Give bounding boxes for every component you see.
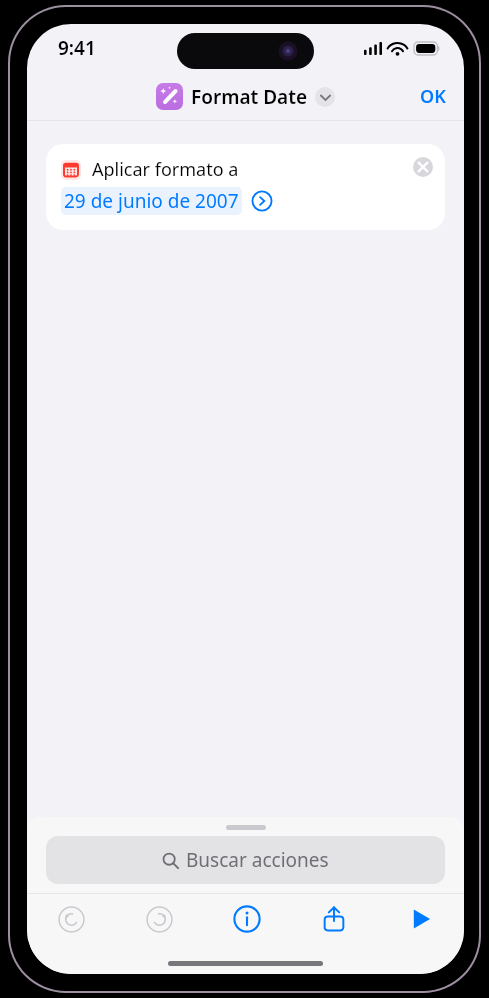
staticText: Buscar acciones <box>186 847 329 873</box>
button[interactable]: Redo <box>115 894 203 944</box>
button[interactable]: Run shortcut <box>377 894 464 944</box>
button[interactable]: Action details <box>203 894 290 944</box>
other: Show more options <box>315 87 335 107</box>
button[interactable]: Undo <box>27 894 115 944</box>
staticText: 29 de junio de 2007 <box>64 188 239 214</box>
button[interactable]: 29 de junio de 2007 <box>61 187 242 215</box>
staticText: Format Date <box>191 84 308 110</box>
button[interactable]: OK <box>402 76 464 117</box>
staticText: 9:41 <box>58 35 96 61</box>
button[interactable]: Open date options <box>251 190 273 212</box>
button[interactable]: Format Date <box>156 83 335 110</box>
staticText: Aplicar formato a <box>92 157 239 182</box>
button[interactable]: Buscar acciones <box>46 836 445 884</box>
button[interactable]: Remove action <box>413 157 433 177</box>
button[interactable]: Share <box>290 894 377 944</box>
button[interactable]: Aplicar formato a <box>46 144 445 230</box>
